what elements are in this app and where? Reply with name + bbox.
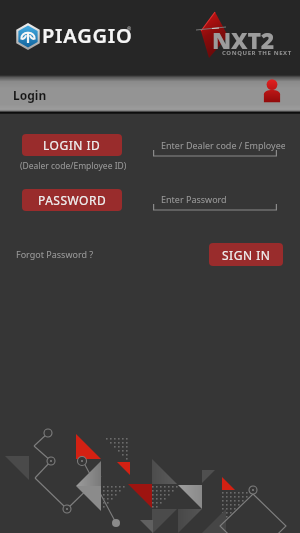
- button[interactable]: PASSWORD: [22, 189, 122, 211]
- staticText: PIAGGIO: [42, 22, 133, 49]
- staticText: Enter Password: [161, 193, 227, 205]
- staticText: LOGIN ID: [43, 137, 101, 153]
- staticText: SIGN IN: [222, 247, 271, 263]
- button[interactable]: Forgot Password ?: [14, 245, 96, 263]
- button[interactable]: Profile: [263, 80, 281, 103]
- staticText: NXT2: [212, 24, 275, 55]
- button[interactable]: LOGIN ID: [22, 134, 122, 156]
- staticText: Enter Dealer code / Employee: [161, 139, 285, 151]
- staticText: (Dealer code/Employee ID): [20, 160, 126, 172]
- staticText: Forgot Password ?: [16, 248, 94, 260]
- button[interactable]: Enter Dealer code / Employee: [153, 136, 277, 157]
- button[interactable]: Enter Password: [153, 190, 277, 211]
- staticText: CONQUER THE NEXT: [222, 49, 292, 57]
- button[interactable]: SIGN IN: [209, 243, 283, 266]
- staticText: PASSWORD: [38, 192, 107, 208]
- staticText: ®: [127, 26, 132, 33]
- staticText: Login: [13, 87, 47, 103]
